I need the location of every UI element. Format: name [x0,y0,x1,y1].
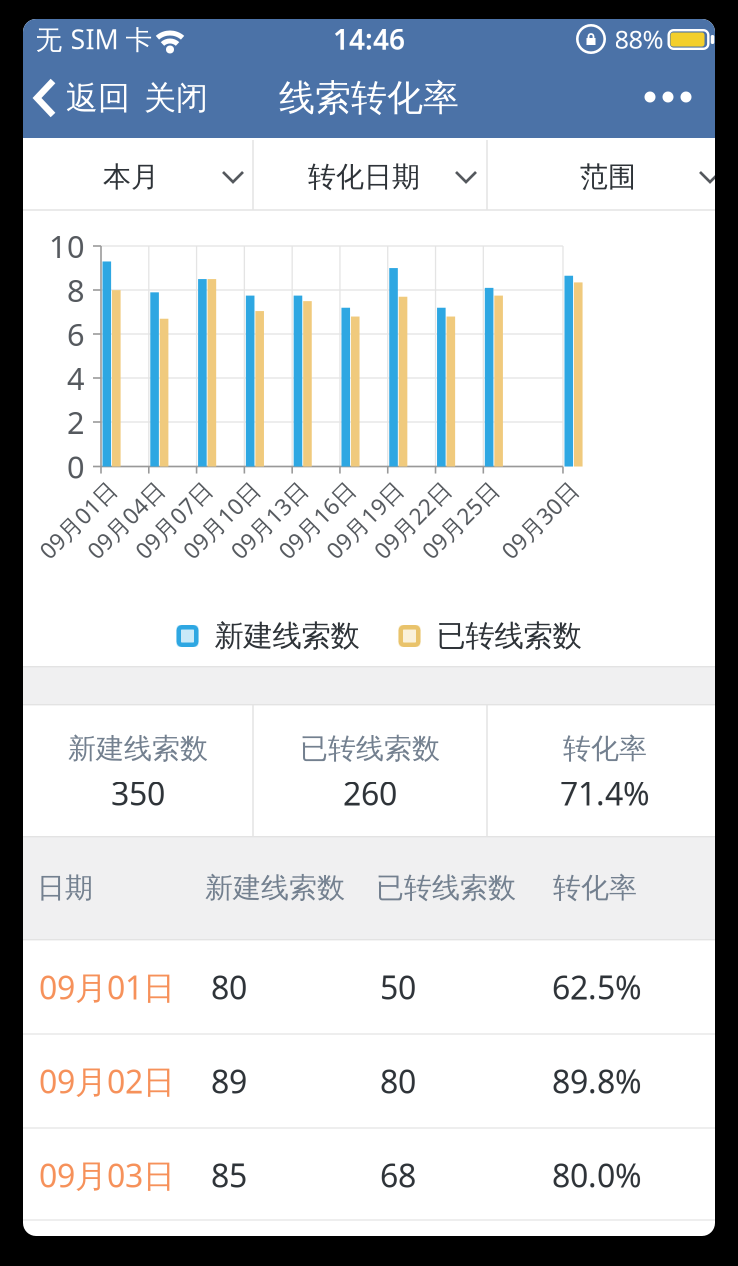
staticText: 50 [380,966,416,1008]
button[interactable]: 本月 [23,138,253,210]
staticText: 09月02日 [39,1060,175,1102]
staticText: 09月25日 [411,505,509,535]
staticText: 62.5% [552,966,642,1008]
staticText: 10 [49,226,85,266]
button[interactable]: 转化日期 [253,138,487,210]
staticText: 09月16日 [268,505,366,535]
staticText: 线索转化率 [279,76,459,120]
staticText: 返回 [66,78,130,118]
staticText: 2 [67,402,85,442]
staticText: 8 [67,270,85,310]
button[interactable]: 返回 [30,70,134,126]
staticText: 已转线索数 [300,732,440,766]
staticText: 14:46 [333,20,405,58]
staticText: 09月01日 [39,966,175,1008]
staticText: 新建线索数 [68,732,208,766]
staticText: 88% [614,22,663,56]
staticText: 09月10日 [172,505,270,535]
staticText: 转化日期 [308,160,420,194]
staticText: 转化率 [563,732,647,766]
staticText: 80 [380,1060,416,1102]
button[interactable]: 09月01日 [22,957,192,1017]
staticText: 4 [67,358,85,398]
staticText: 89.8% [552,1060,642,1102]
staticText: 09月13日 [220,505,318,535]
staticText: 09月04日 [77,505,175,535]
staticText: 本月 [103,160,159,194]
staticText: 80.0% [552,1154,642,1196]
staticText: 09月07日 [125,505,223,535]
staticText: 范围 [580,160,636,194]
button[interactable]: 09月02日 [22,1051,192,1111]
staticText: 80 [211,966,247,1008]
staticText: 89 [211,1060,247,1102]
staticText: 新建线索数 [214,618,359,654]
staticText: 0 [67,446,85,487]
button[interactable]: 更多 [628,69,708,125]
staticText: 260 [343,772,397,814]
staticText: 09月22日 [363,505,461,535]
staticText: 09月03日 [39,1154,175,1196]
staticText: 09月30日 [491,505,589,535]
staticText: 09月01日 [29,505,127,535]
staticText: 6 [67,314,85,354]
staticText: 关闭 [144,78,208,118]
staticText: 日期 [37,871,93,905]
staticText: 350 [111,772,165,814]
staticText: 已转线索数 [376,871,516,905]
staticText: 71.4% [560,772,650,814]
staticText: 新建线索数 [205,871,345,905]
button[interactable]: 关闭 [136,70,216,126]
staticText: 转化率 [553,871,637,905]
staticText: 无 SIM 卡 [35,21,152,57]
button[interactable]: 09月03日 [22,1145,192,1205]
staticText: 09月19日 [316,505,414,535]
staticText: 已转线索数 [436,618,581,654]
staticText: 85 [211,1154,247,1196]
button[interactable]: 范围 [487,138,715,210]
staticText: 68 [380,1154,416,1196]
